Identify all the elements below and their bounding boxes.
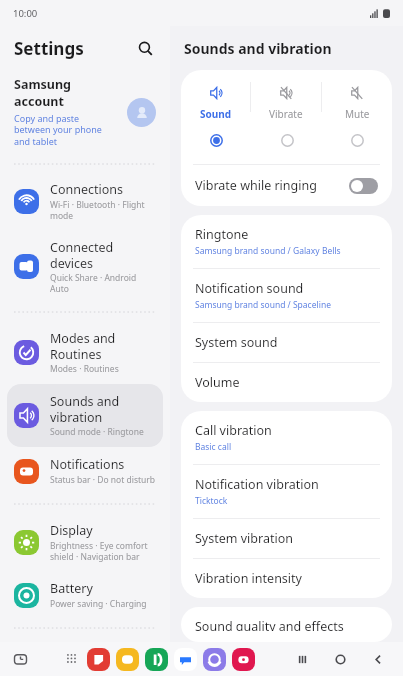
staticText: Ticktock (195, 495, 228, 507)
button[interactable]: App (203, 648, 226, 671)
staticText: Connections (50, 181, 123, 198)
button[interactable] (252, 127, 322, 153)
staticText: Ringtone (195, 226, 249, 243)
button[interactable]: Recents (283, 644, 321, 674)
staticText: Vibrate while ringing (195, 177, 349, 194)
staticText: Sounds and vibration (184, 39, 332, 58)
staticText: Samsung (14, 76, 71, 93)
button[interactable]: Battery (7, 571, 163, 619)
staticText: Sounds and vibration (50, 393, 120, 425)
button[interactable]: App (174, 648, 197, 671)
button[interactable]: Recent apps (8, 647, 32, 671)
button[interactable]: Ringtone (181, 215, 392, 269)
button[interactable]: Vibrate (251, 82, 321, 123)
button[interactable]: Search (132, 35, 158, 61)
staticText: account (14, 93, 64, 110)
staticText: Power saving · Charging (50, 598, 147, 610)
staticText: Copy and paste between your phone and ta… (14, 112, 102, 148)
button[interactable]: Notification vibration (181, 465, 392, 519)
button[interactable]: Sound (181, 82, 250, 123)
staticText: Call vibration (195, 422, 272, 439)
button[interactable]: Vibration intensity (181, 559, 392, 598)
staticText: Brightness · Eye comfort shield · Naviga… (50, 540, 148, 562)
button[interactable]: Display (7, 513, 163, 571)
staticText: Battery (50, 580, 93, 597)
staticText: Display (50, 522, 93, 539)
staticText: Sound (200, 107, 232, 121)
button[interactable]: Vibrate while ringing (181, 165, 392, 206)
button[interactable]: Connected devices (7, 230, 163, 303)
staticText: Samsung brand sound / Spaceline (195, 299, 331, 311)
staticText: Notification sound (195, 280, 304, 297)
staticText: Modes and Routines (50, 330, 157, 362)
button[interactable]: Volume (181, 363, 392, 402)
staticText: Quick Share · Android Auto (50, 272, 157, 294)
staticText: Vibrate (269, 107, 303, 121)
staticText: System sound (195, 334, 278, 351)
staticText: Wi-Fi · Bluetooth · Flight mode (50, 199, 145, 221)
staticText: Notification vibration (195, 476, 319, 493)
button[interactable]: Home (321, 644, 359, 674)
button[interactable]: Notification sound (181, 269, 392, 323)
staticText: Sound quality and effects (195, 618, 344, 631)
staticText: Modes · Routines (50, 363, 119, 375)
staticText: System vibration (195, 530, 293, 547)
button[interactable]: System sound (181, 323, 392, 363)
button[interactable]: Samsung (0, 70, 170, 156)
button[interactable]: Sound quality and effects (181, 607, 392, 642)
staticText: Mute (345, 107, 370, 121)
button[interactable]: System vibration (181, 519, 392, 559)
button[interactable]: Connections (7, 172, 163, 230)
button[interactable] (181, 127, 252, 153)
button[interactable]: Mute (322, 82, 392, 123)
button[interactable]: App (87, 648, 110, 671)
staticText: Vibration intensity (195, 570, 302, 587)
staticText: 10:00 (13, 7, 38, 20)
staticText: Volume (195, 374, 240, 391)
button[interactable]: Notifications (7, 447, 163, 495)
staticText: Sound mode · Ringtone (50, 426, 144, 438)
button[interactable]: Modes and Routines (7, 321, 163, 384)
button[interactable]: Sounds and vibration (7, 384, 163, 447)
button[interactable]: Apps (60, 647, 84, 671)
staticText: Connected devices (50, 239, 157, 271)
button[interactable] (322, 127, 392, 153)
button[interactable]: Call vibration (181, 411, 392, 465)
button[interactable]: App (116, 648, 139, 671)
staticText: Status bar · Do not disturb (50, 474, 156, 486)
staticText: Basic call (195, 441, 232, 453)
staticText: Notifications (50, 456, 125, 473)
button[interactable]: App (145, 648, 168, 671)
staticText: Settings (14, 37, 84, 60)
button[interactable]: Back (359, 644, 397, 674)
button[interactable]: App (232, 648, 255, 671)
staticText: Samsung brand sound / Galaxy Bells (195, 245, 341, 257)
